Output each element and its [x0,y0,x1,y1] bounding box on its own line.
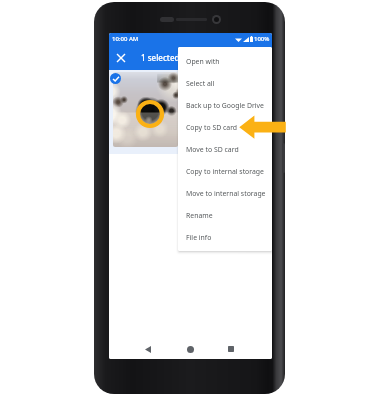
staticText: Move to internal storage [186,189,266,198]
staticText: Open with [186,57,220,66]
button[interactable]: Select all [178,72,272,94]
staticText: 1 selected [141,52,180,63]
button[interactable]: Close selection [109,44,133,70]
button[interactable]: Move to internal storage [178,182,272,204]
button[interactable]: Rename [178,204,272,226]
button[interactable]: Copy to internal storage [178,160,272,182]
button[interactable] [113,72,178,147]
button[interactable]: Home [179,338,201,359]
button[interactable]: Recent apps [220,338,242,359]
staticText: 10:00 AM [112,35,139,43]
staticText: Rename [186,211,213,220]
staticText: 100% [254,35,270,43]
button[interactable]: Back up to Google Drive [178,94,272,116]
staticText: Copy to SD card [186,123,238,132]
button[interactable]: Move to SD card [178,138,272,160]
button[interactable]: Open with [178,50,272,72]
button[interactable]: Copy to SD card [178,116,272,138]
button[interactable]: File info [178,226,272,248]
staticText: Move to SD card [186,145,239,154]
staticText: Select all [186,79,215,88]
staticText: File info [186,233,212,242]
button[interactable]: Back [137,338,159,359]
staticText: Back up to Google Drive [186,101,264,110]
staticText: Copy to internal storage [186,167,264,176]
